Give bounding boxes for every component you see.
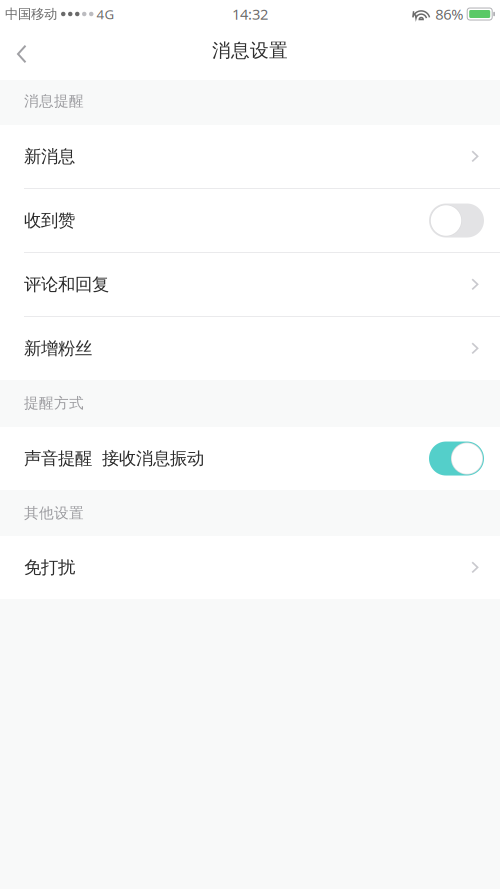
staticText: 提醒方式 — [24, 394, 84, 412]
staticText: 声音提醒 接收消息振动 — [24, 448, 204, 469]
staticText: 免打扰 — [24, 557, 75, 578]
button[interactable]: 评论和回复 — [0, 253, 500, 316]
button[interactable]: 声音提醒 接收消息振动 — [0, 427, 500, 490]
button[interactable]: 收到赞 — [0, 189, 500, 252]
staticText: 收到赞 — [24, 210, 75, 231]
button[interactable]: 返回 — [0, 28, 54, 80]
staticText: 评论和回复 — [24, 274, 109, 295]
staticText: 消息提醒 — [24, 92, 84, 110]
staticText: 14:32 — [232, 4, 268, 24]
staticText: 消息设置 — [212, 39, 288, 62]
staticText: 其他设置 — [24, 504, 84, 522]
staticText: 中国移动 — [5, 6, 57, 22]
button[interactable]: 新消息 — [0, 125, 500, 188]
staticText: 新增粉丝 — [24, 338, 92, 359]
staticText: 86% — [435, 4, 463, 24]
staticText: 新消息 — [24, 146, 75, 167]
button[interactable]: 新增粉丝 — [0, 317, 500, 380]
staticText: 4G — [93, 5, 114, 23]
button[interactable]: 免打扰 — [0, 536, 500, 599]
